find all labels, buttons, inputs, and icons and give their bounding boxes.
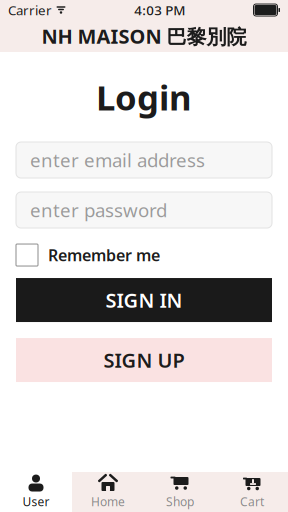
button[interactable]: enter password [0, 192, 288, 228]
staticText: Shop [166, 493, 194, 509]
button[interactable]: User [0, 472, 72, 512]
button[interactable]: Cart [216, 472, 288, 512]
staticText: User [22, 493, 49, 509]
staticText: NH MAISON 巴黎別院 [41, 23, 246, 49]
staticText: Remember me [48, 244, 160, 266]
staticText: 4:03 PM [134, 1, 185, 19]
button[interactable]: SIGN IN [0, 278, 288, 322]
staticText: SIGN IN [105, 287, 182, 313]
staticText: SIGN UP [103, 347, 184, 373]
staticText: Login [96, 74, 192, 120]
staticText: Cart [240, 493, 264, 509]
button[interactable]: Remember me [0, 228, 288, 278]
button[interactable]: Shop [144, 472, 216, 512]
staticText: enter password [30, 198, 167, 222]
button[interactable]: Home [72, 472, 144, 512]
staticText: enter email address [30, 148, 205, 172]
button[interactable]: SIGN UP [0, 338, 288, 382]
staticText: Home [91, 493, 125, 509]
button[interactable]: enter email address [0, 142, 288, 178]
staticText: Carrier [8, 1, 52, 19]
